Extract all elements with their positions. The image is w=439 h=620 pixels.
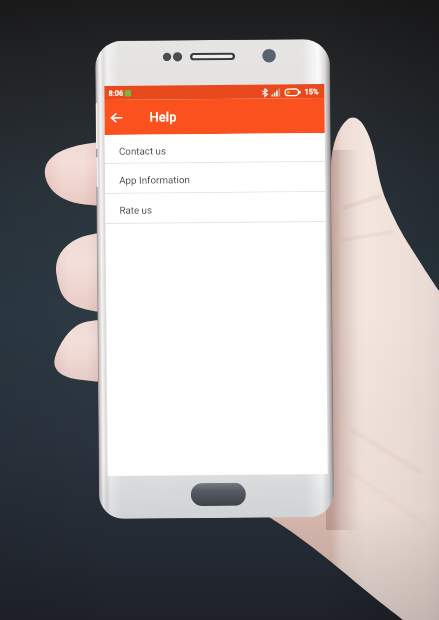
staticText: Help	[149, 109, 177, 124]
button[interactable]: Back	[104, 101, 128, 135]
staticText: 8:06	[108, 89, 123, 98]
staticText: Contact us	[119, 145, 167, 157]
button[interactable]: Contact us	[105, 133, 325, 164]
staticText: App Information	[119, 174, 190, 186]
staticText: 15%	[304, 87, 319, 96]
button[interactable]: App Information	[105, 162, 325, 194]
staticText: Rate us	[119, 204, 152, 216]
button[interactable]: Rate us	[105, 192, 326, 224]
